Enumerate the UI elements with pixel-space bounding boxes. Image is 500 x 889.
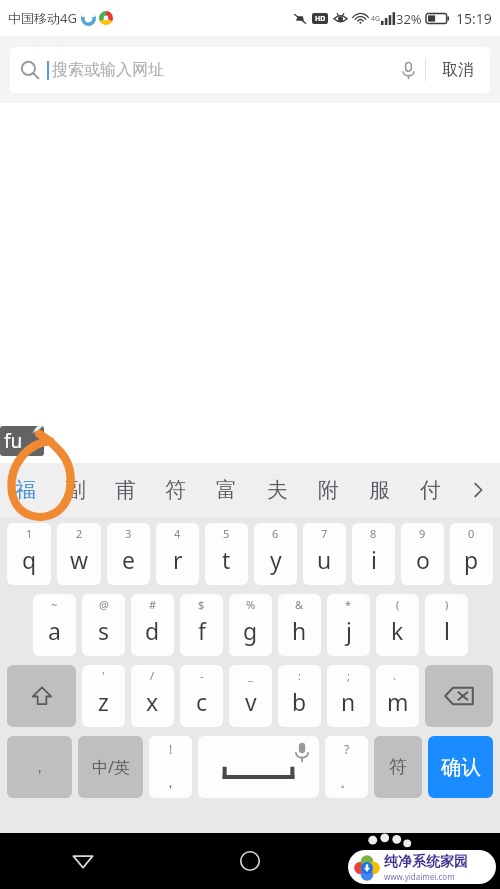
button[interactable]: Recents: [393, 837, 441, 885]
button[interactable]: $: [180, 594, 223, 656]
button[interactable]: 3: [107, 523, 150, 585]
staticText: w: [70, 544, 89, 575]
button[interactable]: Space: [198, 736, 319, 798]
staticText: 副: [65, 477, 86, 503]
button[interactable]: 副: [50, 463, 100, 517]
button[interactable]: 夫: [252, 463, 303, 517]
staticText: t: [222, 544, 231, 575]
button[interactable]: 甫: [100, 463, 150, 517]
staticText: 附: [318, 477, 339, 503]
button[interactable]: Voice search: [391, 53, 425, 87]
staticText: (: [396, 597, 400, 612]
staticText: ，: [32, 758, 47, 777]
staticText: s: [98, 615, 110, 646]
button[interactable]: 1: [7, 523, 51, 585]
button[interactable]: 4: [156, 523, 199, 585]
button[interactable]: 7: [303, 523, 346, 585]
staticText: 、: [392, 668, 403, 682]
button[interactable]: 符: [374, 736, 422, 798]
button[interactable]: Home: [226, 837, 274, 885]
staticText: p: [464, 544, 479, 575]
button[interactable]: More candidates: [456, 463, 500, 517]
button[interactable]: 0: [450, 523, 493, 585]
button[interactable]: 8: [352, 523, 395, 585]
staticText: z: [98, 686, 109, 717]
staticText: 4G: [371, 14, 381, 24]
button[interactable]: #: [131, 594, 174, 656]
staticText: %: [246, 597, 256, 612]
staticText: www.yidaimei.com: [384, 871, 455, 882]
staticText: !: [169, 741, 173, 757]
staticText: 夫: [267, 477, 288, 503]
button[interactable]: (: [376, 594, 419, 656]
button[interactable]: !: [149, 736, 192, 798]
staticText: o: [416, 544, 430, 575]
staticText: 中/英: [92, 756, 130, 778]
button[interactable]: Back: [59, 837, 107, 885]
staticText: 4: [174, 526, 181, 541]
button[interactable]: 取消: [426, 47, 490, 93]
button[interactable]: ): [425, 594, 468, 656]
button[interactable]: 附: [303, 463, 354, 517]
staticText: f: [198, 615, 206, 646]
button[interactable]: ?: [325, 736, 368, 798]
button[interactable]: 搜索或输入网址: [10, 47, 490, 93]
button[interactable]: -: [180, 665, 223, 727]
button[interactable]: ;: [327, 665, 370, 727]
button[interactable]: 5: [205, 523, 248, 585]
staticText: 15:19: [456, 9, 492, 28]
button[interactable]: *: [327, 594, 370, 656]
staticText: 符: [389, 756, 407, 779]
button[interactable]: @: [82, 594, 125, 656]
staticText: /: [150, 668, 155, 683]
button[interactable]: 富: [201, 463, 252, 517]
button[interactable]: Backspace: [425, 665, 493, 727]
button[interactable]: 服: [354, 463, 405, 517]
button[interactable]: 9: [401, 523, 444, 585]
button[interactable]: 、: [376, 665, 419, 727]
staticText: 9: [419, 526, 426, 541]
staticText: ': [102, 668, 105, 683]
button[interactable]: %: [229, 594, 272, 656]
button[interactable]: 福: [0, 463, 50, 517]
button[interactable]: ~: [33, 594, 76, 656]
button[interactable]: &: [278, 594, 321, 656]
staticText: 7: [321, 526, 328, 541]
staticText: HD: [315, 14, 326, 24]
button[interactable]: 2: [57, 523, 101, 585]
staticText: -: [200, 668, 204, 683]
staticText: ): [445, 597, 449, 612]
staticText: g: [243, 615, 258, 646]
button[interactable]: _: [229, 665, 272, 727]
staticText: &: [295, 597, 304, 612]
button[interactable]: ，: [7, 736, 72, 798]
button[interactable]: 确认: [428, 736, 493, 798]
button[interactable]: fu: [0, 426, 44, 456]
staticText: 32%: [396, 10, 422, 28]
button[interactable]: /: [131, 665, 174, 727]
staticText: h: [292, 615, 307, 646]
staticText: d: [145, 615, 160, 646]
staticText: j: [346, 615, 352, 646]
staticText: u: [317, 544, 332, 575]
button[interactable]: Shift: [7, 665, 76, 727]
staticText: 甫: [115, 477, 136, 503]
staticText: k: [391, 615, 404, 646]
staticText: 1: [26, 526, 33, 541]
button[interactable]: 6: [254, 523, 297, 585]
staticText: c: [196, 686, 208, 717]
staticText: fu: [4, 428, 23, 454]
staticText: 福: [15, 477, 36, 503]
staticText: 纯净系统家园: [384, 853, 468, 871]
staticText: i: [371, 544, 377, 575]
button[interactable]: 付: [405, 463, 456, 517]
button[interactable]: 符: [150, 463, 201, 517]
button[interactable]: ': [82, 665, 125, 727]
staticText: 8: [370, 526, 377, 541]
button[interactable]: 中/英: [78, 736, 143, 798]
staticText: 付: [420, 477, 441, 503]
staticText: 5: [223, 526, 230, 541]
button[interactable]: :: [278, 665, 321, 727]
staticText: 3: [125, 526, 132, 541]
staticText: 。: [340, 774, 353, 790]
